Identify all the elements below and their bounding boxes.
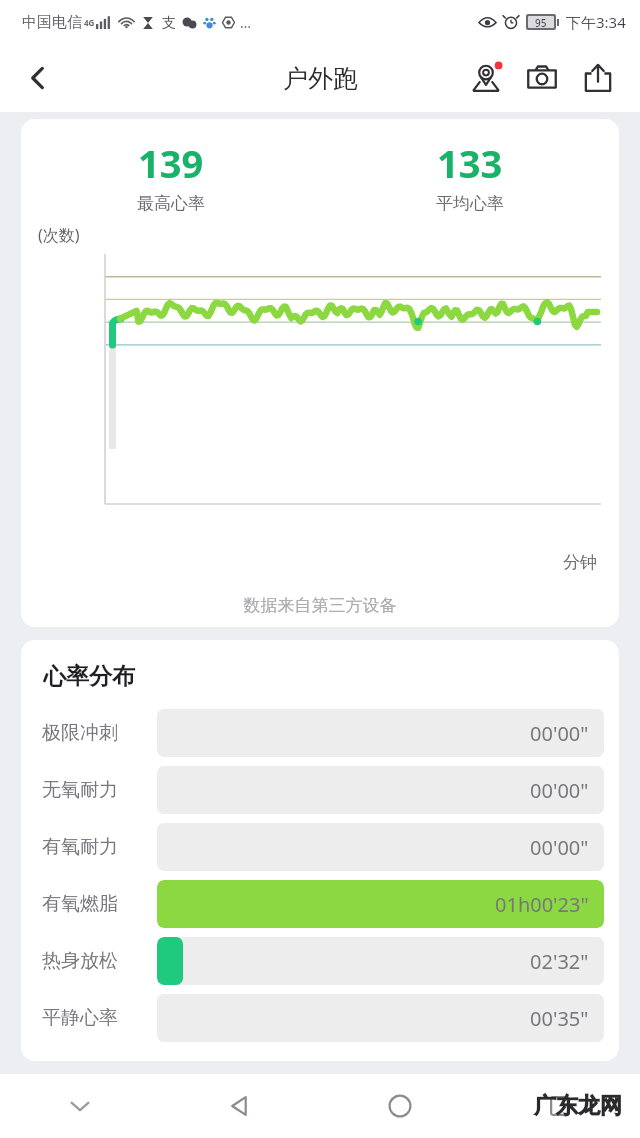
staticText: 00'35" — [530, 1005, 589, 1032]
button[interactable]: Camera — [514, 50, 570, 106]
button[interactable]: Hide keyboard — [0, 1074, 160, 1138]
staticText: 最高心率 — [137, 193, 205, 214]
button[interactable]: Back — [10, 50, 66, 106]
staticText: 平静心率 — [42, 1006, 157, 1030]
button[interactable]: 有氧耐力 — [21, 823, 619, 871]
staticText: … — [240, 13, 252, 32]
button[interactable]: 极限冲刺 — [21, 709, 619, 757]
staticText: 心率分布 — [43, 662, 135, 691]
button[interactable]: 平静心率 — [21, 994, 619, 1042]
staticText: 户外跑 — [283, 63, 358, 94]
staticText: 广东龙网 — [534, 1092, 622, 1120]
button[interactable]: 热身放松 — [21, 937, 619, 985]
button[interactable]: Map route — [458, 50, 514, 106]
button[interactable]: 无氧耐力 — [21, 766, 619, 814]
staticText: 00'00" — [530, 834, 589, 861]
staticText: 02'32" — [530, 948, 589, 975]
staticText: 中国电信 — [22, 13, 82, 32]
staticText: 分钟 — [21, 552, 597, 573]
button[interactable]: Recents — [480, 1074, 640, 1138]
staticText: 有氧耐力 — [42, 835, 157, 859]
staticText: 极限冲刺 — [42, 721, 157, 745]
staticText: 平均心率 — [436, 193, 504, 214]
staticText: 133 — [437, 137, 503, 189]
staticText: 95 — [535, 16, 547, 28]
staticText: 00'00" — [530, 777, 589, 804]
staticText: 01h00'23" — [495, 891, 589, 918]
staticText: 139 — [138, 137, 204, 189]
button[interactable]: Share — [570, 50, 626, 106]
staticText: 热身放松 — [42, 949, 157, 973]
button[interactable]: 有氧燃脂 — [21, 880, 619, 928]
staticText: 无氧耐力 — [42, 778, 157, 802]
staticText: 数据来自第三方设备 — [21, 595, 619, 616]
staticText: 00'00" — [530, 720, 589, 747]
staticText: 支 — [162, 14, 176, 32]
button[interactable]: Home — [320, 1074, 480, 1138]
staticText: (次数) — [38, 224, 80, 246]
staticText: 有氧燃脂 — [42, 892, 157, 916]
staticText: 4G — [84, 17, 95, 28]
button[interactable]: Back — [160, 1074, 320, 1138]
staticText: 下午3:34 — [566, 12, 626, 32]
